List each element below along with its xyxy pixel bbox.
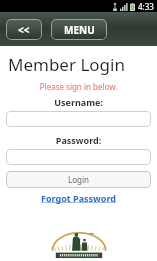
button[interactable]: Login (6, 171, 151, 188)
button[interactable] (6, 149, 151, 165)
staticText: Please sign in below. (0, 81, 157, 92)
staticText: Username: (0, 96, 157, 108)
staticText: MENU (64, 23, 95, 37)
button[interactable]: Forgot Password (41, 192, 116, 204)
staticText: Forgot Password (41, 192, 116, 204)
other: Bartow County logo (50, 227, 108, 259)
button[interactable]: MENU (51, 19, 107, 40)
staticText: << (18, 23, 30, 37)
staticText: Password: (0, 134, 157, 146)
button[interactable]: Back (6, 19, 42, 40)
staticText: 4:33 (138, 1, 154, 12)
staticText: Login (68, 174, 89, 185)
button[interactable] (6, 111, 151, 127)
staticText: Member Login (8, 53, 125, 76)
